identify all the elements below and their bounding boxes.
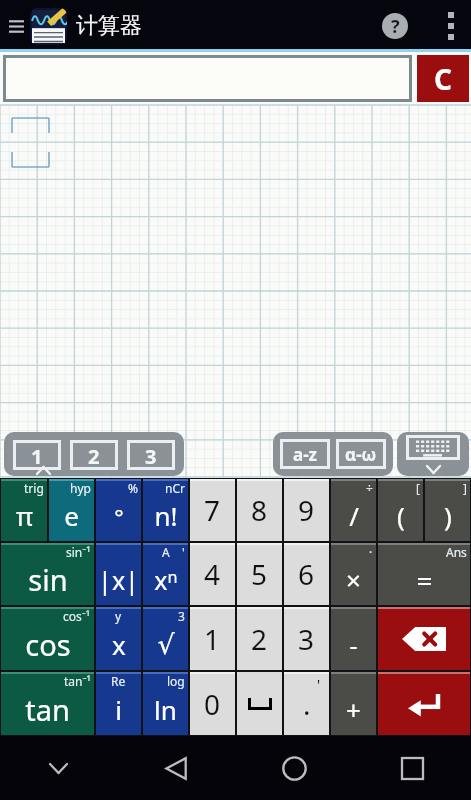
staticText: 1 — [204, 620, 221, 658]
staticText: sin — [28, 560, 68, 599]
button[interactable]: 3 — [284, 607, 329, 670]
button[interactable]: 1 — [16, 443, 58, 467]
staticText: log — [167, 673, 185, 689]
button[interactable]: 3 — [130, 443, 172, 467]
staticText: i — [115, 692, 122, 727]
staticText: = — [416, 561, 433, 599]
staticText: cos⁻¹ — [63, 608, 91, 624]
staticText: 1 — [31, 443, 43, 467]
staticText: sin⁻¹ — [66, 544, 91, 560]
button[interactable]: 9 — [284, 479, 329, 541]
button[interactable]: ' — [143, 543, 188, 605]
button[interactable]: Backspace — [378, 607, 470, 670]
staticText: 3 — [298, 620, 315, 658]
staticText: ÷ — [366, 480, 373, 496]
staticText: + — [346, 692, 361, 727]
staticText: ( — [397, 498, 405, 533]
staticText: C — [434, 60, 452, 98]
staticText: ? — [391, 14, 400, 39]
staticText: y — [115, 608, 122, 624]
staticText: a-z — [293, 443, 318, 466]
button[interactable]: Ans — [378, 543, 470, 605]
button[interactable]: · — [331, 543, 376, 605]
button[interactable]: Menu — [5, 0, 27, 52]
staticText: tan — [25, 690, 70, 729]
button[interactable]: 4 — [190, 543, 235, 605]
staticText: · — [369, 544, 373, 560]
staticText: 4 — [204, 555, 221, 593]
button[interactable]: 0 — [190, 672, 235, 735]
staticText: 8 — [251, 491, 268, 529]
staticText: π — [16, 498, 33, 533]
button[interactable]: [ — [378, 479, 423, 541]
staticText: Ans — [446, 544, 467, 560]
button[interactable]: Help — [372, 3, 418, 49]
button[interactable]: More options — [436, 0, 466, 52]
staticText: x — [112, 627, 126, 662]
button[interactable]: y — [96, 607, 141, 670]
staticText: Re — [111, 673, 126, 689]
button[interactable]: + — [331, 672, 376, 735]
button[interactable]: 8 — [237, 479, 282, 541]
staticText: trig — [24, 480, 44, 496]
staticText: e — [64, 498, 79, 533]
staticText: A — [162, 544, 170, 560]
button[interactable]: 6 — [284, 543, 329, 605]
staticText: ' — [317, 675, 321, 694]
staticText: 6 — [298, 555, 315, 593]
button[interactable]: ] — [425, 479, 470, 541]
button[interactable]: 1 — [190, 607, 235, 670]
staticText: [ — [416, 480, 420, 496]
staticText: 3 — [178, 608, 185, 624]
staticText: ' — [182, 544, 185, 560]
staticText: tan⁻¹ — [64, 673, 91, 689]
staticText: |x| — [98, 563, 139, 597]
staticText: nCr — [165, 480, 185, 496]
staticText: 0 — [204, 685, 221, 723]
staticText: 2 — [251, 620, 268, 658]
staticText: ] — [463, 480, 467, 496]
button[interactable]: 7 — [190, 479, 235, 541]
staticText: 2 — [88, 443, 100, 467]
staticText: ° — [114, 501, 124, 531]
button[interactable]: - — [331, 607, 376, 670]
button[interactable]: |x| — [96, 543, 141, 605]
button[interactable]: ÷ — [331, 479, 376, 541]
staticText: 3 — [145, 443, 157, 467]
button[interactable]: 2 — [237, 607, 282, 670]
button[interactable]: nCr — [143, 479, 188, 541]
button[interactable]: % — [96, 479, 141, 541]
staticText: α-ω — [345, 443, 377, 466]
staticText: 7 — [204, 491, 221, 529]
button[interactable]: 5 — [237, 543, 282, 605]
button[interactable]: sin⁻¹ — [1, 543, 94, 605]
button[interactable]: ' — [284, 672, 329, 735]
button[interactable]: Enter — [378, 672, 470, 735]
button[interactable]: cos⁻¹ — [1, 607, 94, 670]
button[interactable]: a-z — [283, 442, 327, 466]
button[interactable]: Space — [237, 672, 282, 735]
button[interactable]: α-ω — [339, 442, 383, 466]
button[interactable]: 2 — [73, 443, 115, 467]
button[interactable]: trig — [1, 479, 47, 541]
staticText: % — [128, 480, 138, 496]
button[interactable]: tan⁻¹ — [1, 672, 94, 735]
staticText: 5 — [251, 555, 268, 593]
staticText: 9 — [298, 491, 315, 529]
staticText: / — [349, 498, 359, 533]
button[interactable]: Recents — [353, 736, 471, 800]
staticText: hyp — [70, 480, 91, 496]
button[interactable]: C — [417, 55, 469, 102]
button[interactable]: hyp — [49, 479, 94, 541]
button[interactable]: 3 — [143, 607, 188, 670]
button[interactable]: Toggle keyboard — [397, 432, 469, 476]
button[interactable]: Back — [117, 736, 235, 800]
button[interactable]: log — [143, 672, 188, 735]
button[interactable]: Home — [235, 736, 353, 800]
staticText: × — [346, 562, 361, 597]
staticText: cos — [25, 625, 71, 664]
button[interactable]: Re — [96, 672, 141, 735]
button[interactable]: Hide — [0, 736, 117, 800]
staticText: √ — [157, 629, 175, 660]
